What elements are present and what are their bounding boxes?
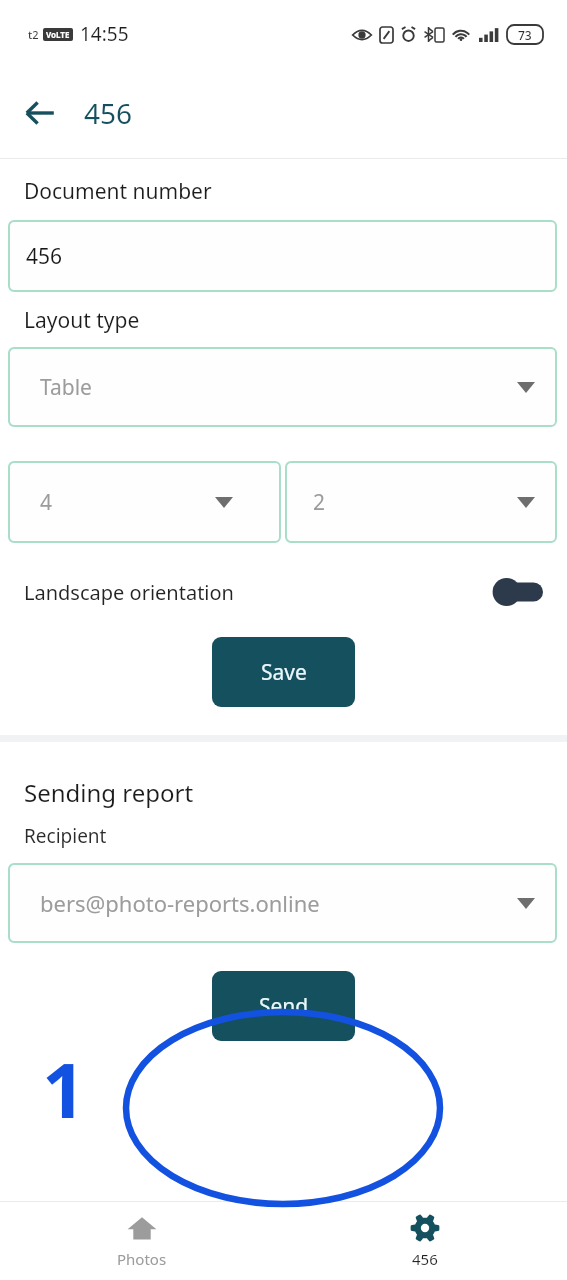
button[interactable]: Rows: [285, 461, 557, 543]
staticText: 456: [26, 242, 63, 271]
button[interactable]: Landscape orientation: [0, 569, 567, 615]
staticText: 1: [42, 1037, 86, 1141]
button[interactable]: Photos: [0, 1202, 283, 1280]
staticText: bers@photo-reports.online: [40, 888, 320, 918]
button[interactable]: Table: [8, 347, 557, 427]
button[interactable]: bers@photo-reports.online: [8, 863, 557, 943]
staticText: Save: [261, 658, 307, 687]
staticText: VoLTE: [46, 29, 70, 40]
staticText: 456: [412, 1249, 438, 1269]
staticText: 14:55: [80, 21, 129, 47]
button[interactable]: Send: [212, 971, 355, 1041]
button[interactable]: Back: [14, 87, 66, 139]
button[interactable]: 456: [283, 1202, 567, 1280]
staticText: 73: [518, 27, 532, 43]
staticText: Sending report: [24, 776, 194, 809]
staticText: 456: [84, 94, 133, 132]
staticText: 2: [313, 488, 326, 517]
button[interactable]: Save: [212, 637, 355, 707]
button[interactable]: Columns: [8, 461, 281, 543]
staticText: Photos: [117, 1249, 167, 1269]
staticText: t2: [28, 27, 39, 42]
staticText: Layout type: [24, 306, 140, 335]
staticText: Landscape orientation: [24, 579, 234, 606]
staticText: Document number: [24, 177, 212, 206]
staticText: Table: [40, 373, 92, 402]
staticText: Recipient: [24, 823, 107, 849]
staticText: 4: [40, 488, 53, 517]
staticText: Send: [259, 992, 309, 1021]
